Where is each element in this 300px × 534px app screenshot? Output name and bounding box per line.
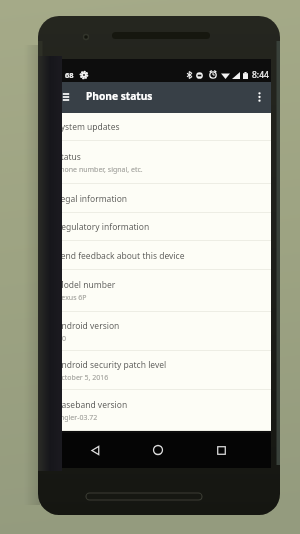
staticText: 68	[65, 70, 74, 80]
staticText: Model number	[56, 279, 116, 291]
button[interactable]: Android version	[46, 312, 271, 351]
staticText: Android security patch level	[56, 359, 167, 371]
staticText: 8:44	[252, 69, 269, 81]
button[interactable]: Home	[146, 438, 170, 462]
staticText: Regulatory information	[56, 221, 150, 233]
staticText: 7.0	[56, 334, 66, 344]
staticText: System updates	[56, 121, 120, 133]
button[interactable]: More options	[249, 87, 269, 107]
button[interactable]: Back	[83, 438, 107, 462]
staticText: angler-03.72	[56, 413, 98, 423]
staticText: Nexus 6P	[56, 293, 87, 303]
button[interactable]: Android security patch level	[46, 351, 271, 390]
staticText: October 5, 2016	[56, 373, 109, 383]
staticText: Phone status	[86, 89, 153, 103]
staticText: Phone number, signal, etc.	[56, 165, 143, 175]
button[interactable]: Open navigation drawer	[56, 86, 76, 108]
staticText: Legal information	[56, 193, 128, 205]
button[interactable]: System updates	[46, 113, 271, 141]
button[interactable]: Send feedback about this device	[46, 241, 271, 270]
button[interactable]: Status	[46, 141, 271, 184]
button[interactable]: Legal information	[46, 184, 271, 213]
staticText: Status	[56, 151, 81, 163]
button[interactable]: Regulatory information	[46, 213, 271, 241]
button[interactable]: Model number	[46, 270, 271, 312]
button[interactable]: Baseband version	[46, 390, 271, 431]
staticText: Android version	[56, 320, 120, 332]
staticText: Send feedback about this device	[56, 250, 185, 262]
button[interactable]: Recent apps	[209, 438, 233, 462]
staticText: Baseband version	[56, 399, 128, 411]
